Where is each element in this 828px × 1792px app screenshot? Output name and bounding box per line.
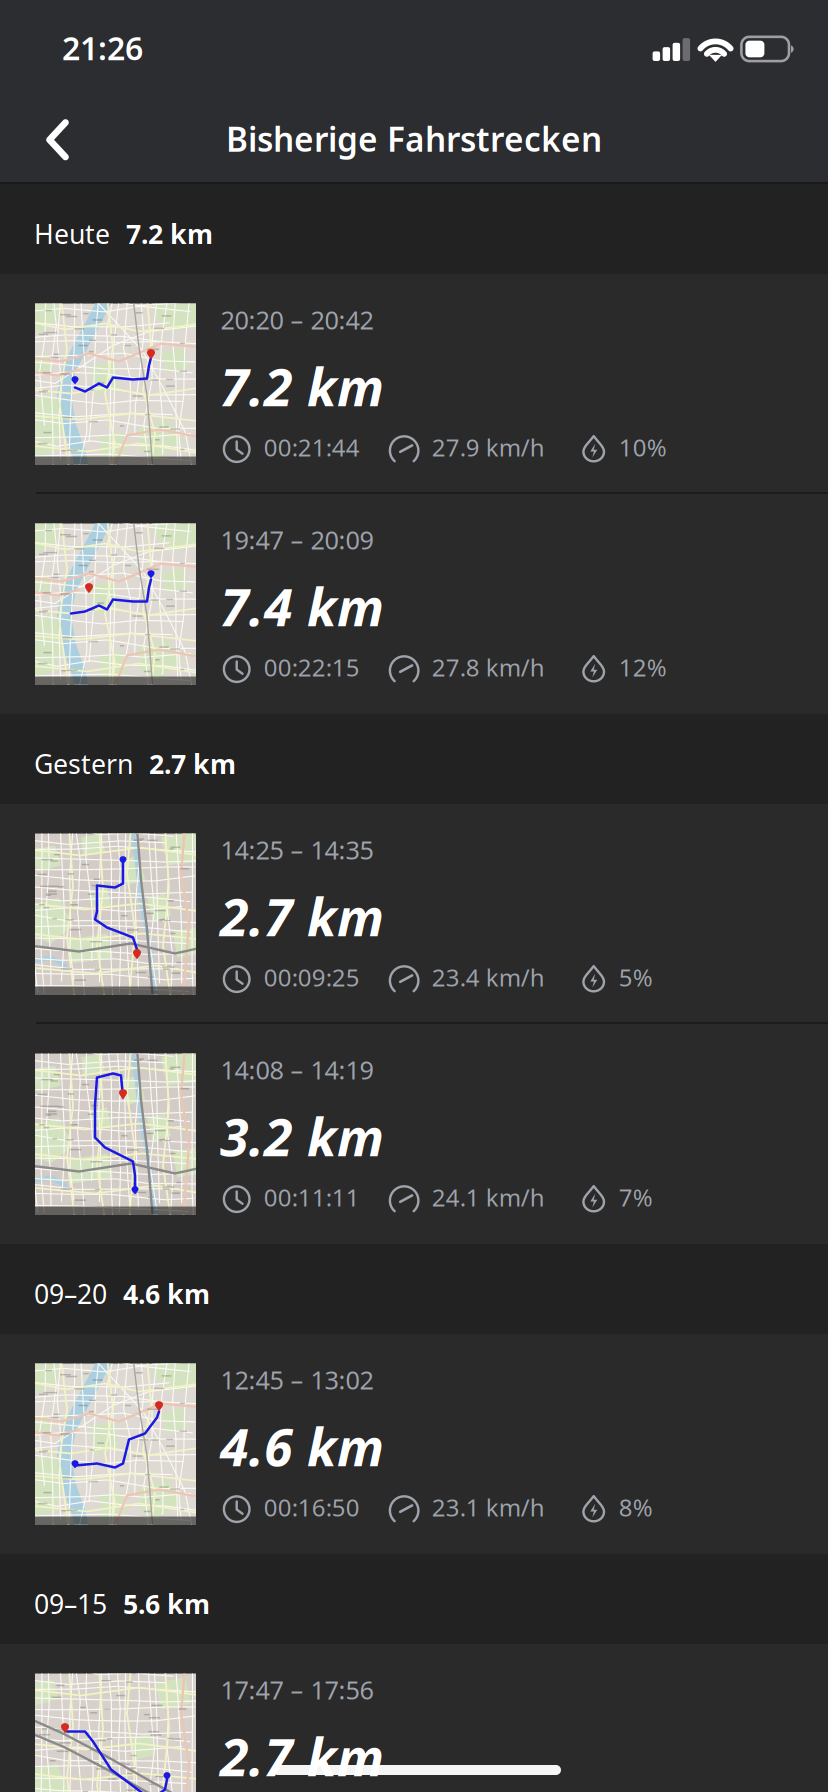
staticText: 21:26 [62, 27, 143, 69]
staticText: 5.6 km [123, 1586, 210, 1621]
staticText: 24.1 km/h [432, 1181, 545, 1213]
staticText: 2.7 km [149, 746, 236, 781]
staticText: 7.2 km [126, 216, 213, 251]
staticText: 7% [619, 1181, 653, 1213]
staticText: 12% [619, 651, 667, 683]
staticText: 14:25 – 14:35 [220, 833, 373, 866]
button[interactable]: 17:47 – 17:56 [0, 1644, 828, 1792]
staticText: 00:09:25 [264, 961, 360, 993]
staticText: 4.6 km [220, 1411, 384, 1481]
staticText: 2.7 km [220, 1721, 384, 1791]
staticText: 09–15 [34, 1586, 107, 1621]
staticText: 00:11:11 [264, 1181, 360, 1213]
staticText: 4.6 km [123, 1276, 210, 1311]
staticText: 2.7 km [220, 881, 384, 951]
button[interactable]: 14:25 – 14:35 [0, 804, 828, 1024]
staticText: Heute [34, 216, 110, 251]
staticText: 19:47 – 20:09 [220, 523, 373, 556]
staticText: 8% [619, 1491, 653, 1523]
staticText: 27.9 km/h [432, 431, 545, 463]
button[interactable]: 14:08 – 14:19 [0, 1024, 828, 1244]
staticText: 10% [619, 431, 667, 463]
staticText: 7.4 km [220, 571, 384, 641]
staticText: 20:20 – 20:42 [220, 303, 373, 336]
staticText: 14:08 – 14:19 [220, 1053, 373, 1086]
staticText: 3.2 km [220, 1101, 384, 1171]
button[interactable]: 20:20 – 20:42 [0, 274, 828, 494]
staticText: Bisherige Fahrstrecken [226, 117, 602, 161]
staticText: 12:45 – 13:02 [220, 1363, 373, 1396]
staticText: 00:21:44 [264, 431, 360, 463]
staticText: 17:47 – 17:56 [220, 1673, 373, 1706]
staticText: 27.8 km/h [432, 651, 545, 683]
staticText: 09–20 [34, 1276, 107, 1311]
staticText: 00:16:50 [264, 1491, 360, 1523]
button[interactable]: Zurück [23, 88, 115, 180]
staticText: 23.4 km/h [432, 961, 545, 993]
staticText: 7.2 km [220, 351, 384, 421]
staticText: 23.1 km/h [432, 1491, 545, 1523]
button[interactable]: 19:47 – 20:09 [0, 494, 828, 714]
button[interactable]: 12:45 – 13:02 [0, 1334, 828, 1554]
staticText: Gestern [34, 746, 133, 781]
staticText: 5% [619, 961, 653, 993]
staticText: 00:22:15 [264, 651, 360, 683]
